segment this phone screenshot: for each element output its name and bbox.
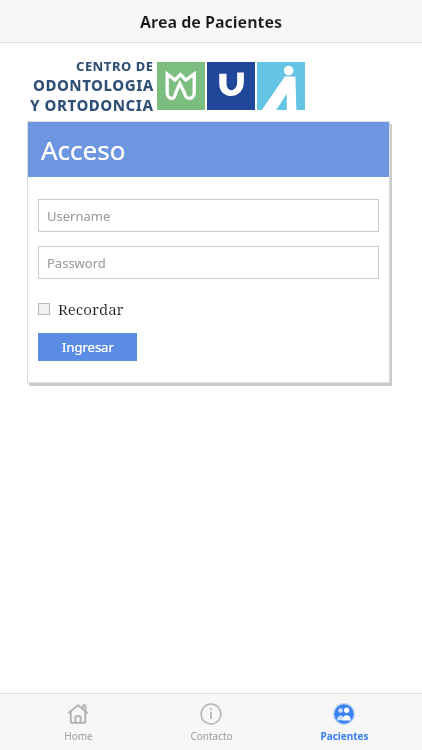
staticText: Y ORTODONCIA <box>30 95 154 115</box>
staticText: Username <box>47 207 111 225</box>
staticText: Acceso <box>41 132 126 167</box>
other: Contacto <box>200 703 222 725</box>
other: Pacientes <box>333 703 355 725</box>
other: Home <box>67 703 89 725</box>
staticText: Contacto <box>190 729 233 743</box>
staticText: ODONTOLOGIA <box>33 75 154 95</box>
staticText: Ingresar <box>62 338 114 356</box>
staticText: Password <box>47 254 106 272</box>
staticText: Recordar <box>58 299 124 319</box>
button[interactable]: Contacto <box>156 698 266 747</box>
staticText: Area de Pacientes <box>140 11 283 33</box>
staticText: Pacientes <box>320 729 369 743</box>
staticText: Home <box>64 729 93 743</box>
button[interactable]: Password <box>38 246 379 279</box>
button[interactable]: Recordar <box>38 297 124 321</box>
button[interactable]: Pacientes <box>289 698 399 747</box>
button[interactable]: Username <box>38 199 379 232</box>
button[interactable]: Home <box>23 698 133 747</box>
staticText: CENTRO DE <box>76 57 154 75</box>
button[interactable]: Ingresar <box>38 333 137 361</box>
